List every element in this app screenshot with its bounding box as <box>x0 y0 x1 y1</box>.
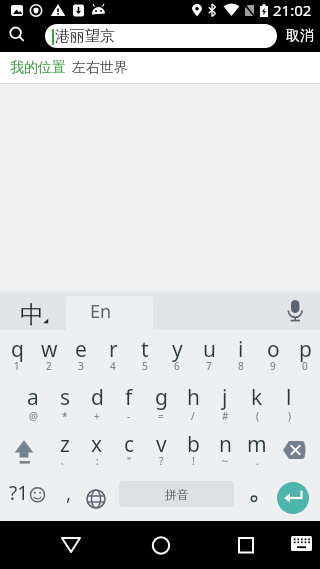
staticText: d <box>91 383 104 412</box>
button[interactable] <box>288 533 316 557</box>
button[interactable] <box>275 290 315 330</box>
button[interactable]: g <box>145 378 177 426</box>
button[interactable]: w <box>33 330 65 378</box>
staticText: ? <box>159 454 164 468</box>
staticText: , <box>66 480 72 506</box>
staticText: b <box>187 430 200 459</box>
button[interactable] <box>0 473 52 521</box>
button[interactable]: b <box>177 426 209 474</box>
staticText: i <box>238 335 244 364</box>
staticText: # <box>222 409 229 423</box>
staticText: 2 <box>46 359 52 373</box>
staticText: h <box>187 383 200 412</box>
staticText: 4 <box>110 359 116 373</box>
staticText: * <box>62 409 68 423</box>
button[interactable] <box>136 521 184 569</box>
staticText: z <box>60 430 70 459</box>
staticText: o <box>267 335 280 364</box>
staticText: 1 <box>14 359 20 373</box>
staticText: ?1 <box>9 480 29 506</box>
button[interactable] <box>277 482 309 514</box>
button[interactable]: l <box>273 378 305 426</box>
staticText: ) <box>288 409 291 423</box>
button[interactable]: c <box>113 426 145 474</box>
staticText: v <box>156 430 167 459</box>
staticText: n <box>219 430 232 459</box>
staticText: ～ <box>220 454 230 467</box>
button[interactable]: j <box>209 378 241 426</box>
staticText: 、 <box>60 454 70 467</box>
button[interactable]: h <box>177 378 209 426</box>
button[interactable]: k <box>241 378 273 426</box>
staticText: - <box>127 409 131 423</box>
staticText: s <box>60 383 71 412</box>
staticText: a <box>27 383 39 412</box>
staticText: . <box>256 454 259 468</box>
button[interactable] <box>52 473 88 521</box>
button[interactable] <box>10 290 52 330</box>
button[interactable] <box>272 426 320 474</box>
staticText: g <box>155 383 168 412</box>
staticText: e <box>75 335 87 364</box>
staticText: @ <box>29 409 38 423</box>
staticText: / <box>191 409 195 423</box>
staticText: 左右世界 <box>72 59 128 77</box>
staticText: q <box>11 335 24 364</box>
staticText: p <box>299 335 312 364</box>
button[interactable]: q <box>1 330 33 378</box>
staticText: f <box>125 383 133 412</box>
button[interactable]: a <box>17 378 49 426</box>
button[interactable]: 左右世界 <box>72 52 128 83</box>
button[interactable]: 港丽望京 <box>45 24 277 48</box>
staticText: 0 <box>302 359 308 373</box>
staticText: 5 <box>142 359 148 373</box>
staticText: : <box>96 454 99 468</box>
button[interactable]: 取消 <box>277 20 320 52</box>
button[interactable]: p <box>289 330 320 378</box>
staticText: ! <box>192 454 195 468</box>
staticText: t <box>141 335 149 364</box>
button[interactable]: s <box>49 378 81 426</box>
button[interactable]: m <box>241 426 273 474</box>
button[interactable]: v <box>145 426 177 474</box>
button[interactable] <box>0 20 45 52</box>
button[interactable] <box>219 521 267 569</box>
button[interactable]: 我的位置 <box>10 52 66 83</box>
staticText: 7 <box>206 359 212 373</box>
staticText: r <box>109 335 118 364</box>
button[interactable]: r <box>97 330 129 378</box>
staticText: 拼音 <box>165 487 189 502</box>
button[interactable]: d <box>81 378 113 426</box>
button[interactable] <box>0 426 48 474</box>
staticText: 21:02 <box>273 0 312 20</box>
button[interactable]: 拼音 <box>119 481 234 507</box>
staticText: En <box>90 299 112 324</box>
button[interactable]: e <box>65 330 97 378</box>
button[interactable]: t <box>129 330 161 378</box>
button[interactable] <box>66 296 153 331</box>
staticText: u <box>203 335 216 364</box>
button[interactable]: z <box>49 426 81 474</box>
staticText: 取消 <box>286 27 314 45</box>
button[interactable]: f <box>113 378 145 426</box>
button[interactable]: i <box>225 330 257 378</box>
button[interactable]: n <box>209 426 241 474</box>
button[interactable] <box>88 473 118 521</box>
staticText: j <box>222 383 228 412</box>
button[interactable]: o <box>257 330 289 378</box>
button[interactable]: u <box>193 330 225 378</box>
staticText: " <box>127 454 132 468</box>
staticText: 我的位置 <box>10 59 66 77</box>
staticText: x <box>91 430 103 459</box>
button[interactable]: y <box>161 330 193 378</box>
staticText: w <box>41 335 58 364</box>
button[interactable] <box>233 473 273 521</box>
button[interactable]: x <box>81 426 113 474</box>
staticText: 3 <box>78 359 84 373</box>
staticText: l <box>286 383 292 412</box>
staticText: 中 <box>20 300 44 330</box>
button[interactable] <box>46 521 94 569</box>
staticText: 6 <box>174 359 180 373</box>
staticText: ( <box>256 409 259 423</box>
staticText: = <box>158 409 164 423</box>
